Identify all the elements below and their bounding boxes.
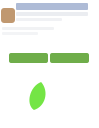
button[interactable] — [9, 53, 48, 63]
button[interactable] — [50, 53, 89, 63]
